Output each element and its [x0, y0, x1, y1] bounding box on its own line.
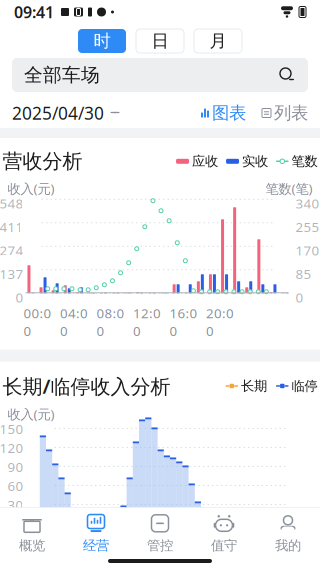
- button[interactable]: 我的: [256, 506, 320, 558]
- button[interactable]: 图表: [201, 102, 246, 124]
- staticText: 12:00: [133, 304, 161, 340]
- staticText: 04:00: [60, 531, 88, 566]
- staticText: 长期/临停收入分析: [2, 373, 170, 399]
- staticText: 411: [0, 218, 23, 236]
- button[interactable]: 管控: [128, 506, 192, 558]
- staticText: 0: [15, 515, 23, 533]
- staticText: 00:00: [23, 304, 51, 340]
- staticText: 2025/04/30: [12, 101, 104, 124]
- staticText: 笔数(笔): [265, 180, 312, 197]
- button[interactable]: 2025/04/30: [12, 101, 121, 124]
- button[interactable]: 日: [136, 29, 184, 53]
- staticText: 255: [295, 218, 319, 236]
- staticText: 管控: [147, 537, 173, 554]
- staticText: 60: [7, 477, 23, 495]
- staticText: 营收分析: [2, 149, 82, 174]
- staticText: 0: [15, 288, 23, 306]
- staticText: 137: [0, 265, 23, 283]
- staticText: 548: [0, 194, 23, 212]
- button[interactable]: 全部车场: [12, 58, 308, 92]
- staticText: 16:00: [169, 304, 197, 340]
- staticText: 应收: [192, 153, 218, 169]
- staticText: 16:00: [169, 531, 197, 566]
- staticText: 值守: [211, 537, 237, 554]
- button[interactable]: 值守: [192, 506, 256, 558]
- staticText: 收入(元): [7, 180, 54, 197]
- staticText: 日: [151, 30, 168, 52]
- staticText: 20:00: [206, 304, 234, 340]
- staticText: 85: [295, 265, 311, 283]
- staticText: 09:41: [14, 1, 54, 23]
- button[interactable]: 概览: [0, 506, 64, 558]
- staticText: 列表: [274, 102, 308, 124]
- staticText: 08:00: [96, 531, 124, 566]
- staticText: 临停: [291, 378, 317, 394]
- staticText: 0: [295, 288, 303, 306]
- button[interactable]: 时: [78, 29, 126, 53]
- staticText: 经营: [83, 537, 109, 554]
- staticText: 图表: [212, 102, 246, 124]
- button[interactable]: 列表: [262, 102, 308, 124]
- staticText: 概览: [19, 537, 45, 554]
- staticText: 全部车场: [24, 63, 100, 86]
- staticText: 月: [209, 30, 226, 52]
- staticText: 30: [7, 496, 23, 514]
- staticText: 长期: [241, 378, 267, 394]
- staticText: 实收: [242, 153, 268, 169]
- button[interactable]: 经营: [64, 506, 128, 558]
- staticText: 08:00: [96, 304, 124, 340]
- staticText: 20:00: [206, 531, 234, 566]
- staticText: 150: [0, 420, 23, 438]
- staticText: 00:00: [23, 531, 51, 566]
- staticText: 170: [295, 241, 319, 259]
- staticText: 时: [93, 30, 110, 52]
- staticText: 274: [0, 241, 23, 259]
- staticText: 12:00: [133, 531, 161, 566]
- staticText: 120: [0, 439, 23, 457]
- staticText: 340: [295, 194, 319, 212]
- staticText: 笔数: [291, 153, 317, 169]
- staticText: 04:00: [60, 304, 88, 340]
- button[interactable]: 月: [194, 29, 242, 53]
- staticText: 90: [7, 458, 23, 476]
- staticText: 收入(元): [7, 405, 54, 423]
- staticText: 我的: [275, 537, 301, 554]
